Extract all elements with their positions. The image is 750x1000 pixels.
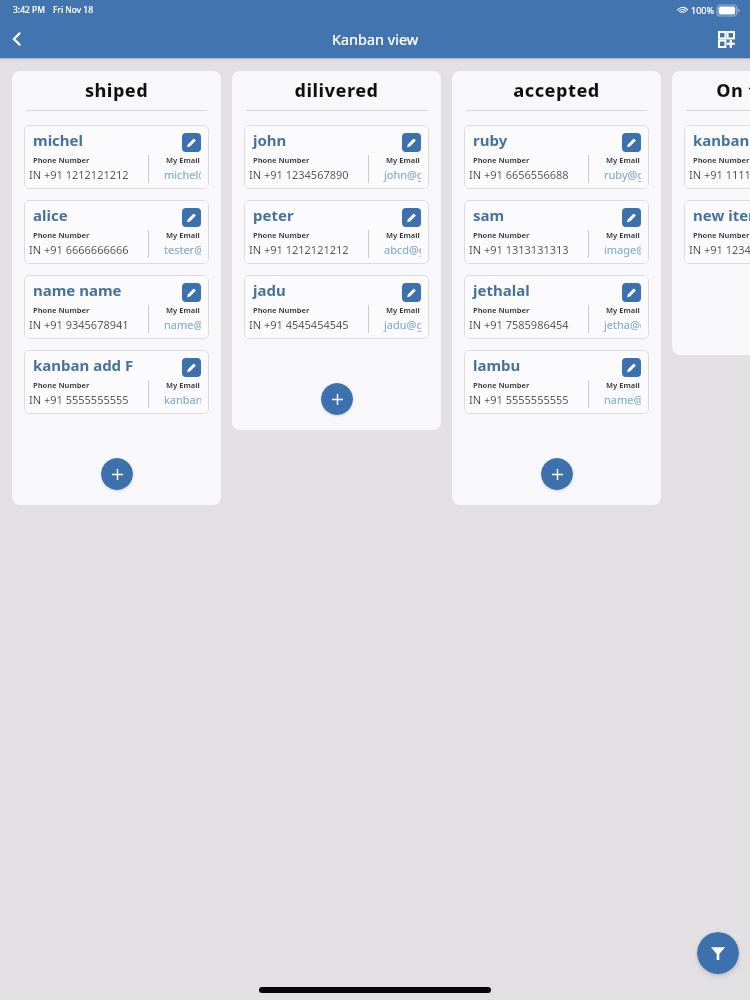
- button[interactable]: Filter: [697, 932, 739, 974]
- button[interactable]: Add card: [541, 458, 573, 490]
- staticText: michel@gmail.com: [164, 167, 201, 182]
- staticText: My Email: [386, 230, 420, 240]
- staticText: My Email: [606, 230, 640, 240]
- staticText: IN +91 4545454545: [249, 317, 349, 332]
- staticText: IN +91 6656556688: [469, 167, 569, 182]
- staticText: My Email: [166, 305, 200, 315]
- staticText: name@gmail.com: [604, 392, 641, 407]
- button[interactable]: Edit: [182, 283, 201, 302]
- staticText: 100%: [691, 4, 714, 16]
- staticText: Phone Number: [473, 230, 530, 240]
- staticText: kanban add F: [33, 355, 182, 375]
- staticText: IN +91 5555555555: [29, 392, 129, 407]
- staticText: Phone Number: [253, 230, 310, 240]
- staticText: IN +91 9345678941: [29, 317, 129, 332]
- button[interactable]: Edit: [622, 358, 641, 377]
- staticText: My Email: [386, 305, 420, 315]
- staticText: IN +91 6666666666: [29, 242, 129, 257]
- staticText: john@gmail.com: [384, 167, 421, 182]
- staticText: Phone Number: [693, 230, 750, 240]
- staticText: image@gmail.com: [604, 242, 641, 257]
- staticText: 3:42 PM: [13, 4, 45, 16]
- button[interactable]: Add card: [101, 458, 133, 490]
- staticText: kanban@x.com: [164, 392, 201, 407]
- staticText: IN +91 1234567890: [249, 167, 349, 182]
- staticText: My Email: [606, 155, 640, 165]
- staticText: Phone Number: [473, 155, 530, 165]
- button[interactable]: lambu: [464, 350, 649, 414]
- button[interactable]: alice: [24, 200, 209, 264]
- button[interactable]: michel: [24, 125, 209, 189]
- staticText: My Email: [166, 155, 200, 165]
- staticText: IN +91 7585986454: [469, 317, 569, 332]
- staticText: jethalal: [473, 280, 622, 300]
- button[interactable]: Edit: [622, 208, 641, 227]
- button[interactable]: Back: [1, 23, 33, 55]
- button[interactable]: Edit: [182, 358, 201, 377]
- staticText: Phone Number: [473, 380, 530, 390]
- staticText: IN +91 1313131313: [469, 242, 569, 257]
- staticText: michel: [33, 130, 182, 150]
- staticText: jadu@gmail.com: [384, 317, 421, 332]
- button[interactable]: Edit: [182, 133, 201, 152]
- staticText: Fri Nov 18: [53, 4, 94, 16]
- button[interactable]: Edit: [622, 133, 641, 152]
- button[interactable]: jethalal: [464, 275, 649, 339]
- staticText: john: [253, 130, 402, 150]
- staticText: Phone Number: [473, 305, 530, 315]
- button[interactable]: Edit: [622, 283, 641, 302]
- staticText: dilivered: [232, 78, 441, 103]
- staticText: sam: [473, 205, 622, 225]
- button[interactable]: Edit: [402, 283, 421, 302]
- staticText: Phone Number: [33, 155, 90, 165]
- staticText: Phone Number: [693, 155, 750, 165]
- staticText: name@gmail.com: [164, 317, 201, 332]
- button[interactable]: kanban add F: [24, 350, 209, 414]
- staticText: abcd@gmail.com: [384, 242, 421, 257]
- button[interactable]: Edit: [402, 133, 421, 152]
- staticText: new item: [693, 205, 750, 225]
- button[interactable]: john: [244, 125, 429, 189]
- staticText: shiped: [12, 78, 221, 103]
- staticText: lambu: [473, 355, 622, 375]
- staticText: IN +91 1212121212: [249, 242, 349, 257]
- staticText: jadu: [253, 280, 402, 300]
- staticText: jetha@gmail.com: [604, 317, 641, 332]
- button[interactable]: Add widget: [710, 23, 742, 55]
- staticText: Phone Number: [33, 230, 90, 240]
- button[interactable]: ruby: [464, 125, 649, 189]
- button[interactable]: peter: [244, 200, 429, 264]
- staticText: My Email: [166, 230, 200, 240]
- staticText: ruby: [473, 130, 622, 150]
- staticText: peter: [253, 205, 402, 225]
- button[interactable]: jadu: [244, 275, 429, 339]
- staticText: On the way: [672, 78, 750, 103]
- staticText: My Email: [166, 380, 200, 390]
- staticText: My Email: [386, 155, 420, 165]
- staticText: accepted: [452, 78, 661, 103]
- button[interactable]: Add card: [321, 383, 353, 415]
- button[interactable]: name name: [24, 275, 209, 339]
- staticText: IN +91 1234567890: [689, 242, 750, 257]
- staticText: name name: [33, 280, 182, 300]
- staticText: IN +91 1212121212: [29, 167, 129, 182]
- button[interactable]: Edit: [182, 208, 201, 227]
- staticText: Phone Number: [253, 155, 310, 165]
- button[interactable]: Edit: [402, 208, 421, 227]
- staticText: My Email: [606, 305, 640, 315]
- button[interactable]: kanban: [684, 125, 750, 189]
- staticText: kanban: [693, 130, 750, 150]
- staticText: Phone Number: [253, 305, 310, 315]
- staticText: Phone Number: [33, 305, 90, 315]
- staticText: IN +91 5555555555: [469, 392, 569, 407]
- staticText: Kanban view: [332, 29, 419, 49]
- button[interactable]: sam: [464, 200, 649, 264]
- button[interactable]: new item: [684, 200, 750, 264]
- staticText: tester@gmail.com: [164, 242, 201, 257]
- staticText: IN +91 1111111111: [689, 167, 750, 182]
- staticText: alice: [33, 205, 182, 225]
- staticText: My Email: [606, 380, 640, 390]
- staticText: Phone Number: [33, 380, 90, 390]
- staticText: ruby@gmail.com: [604, 167, 641, 182]
